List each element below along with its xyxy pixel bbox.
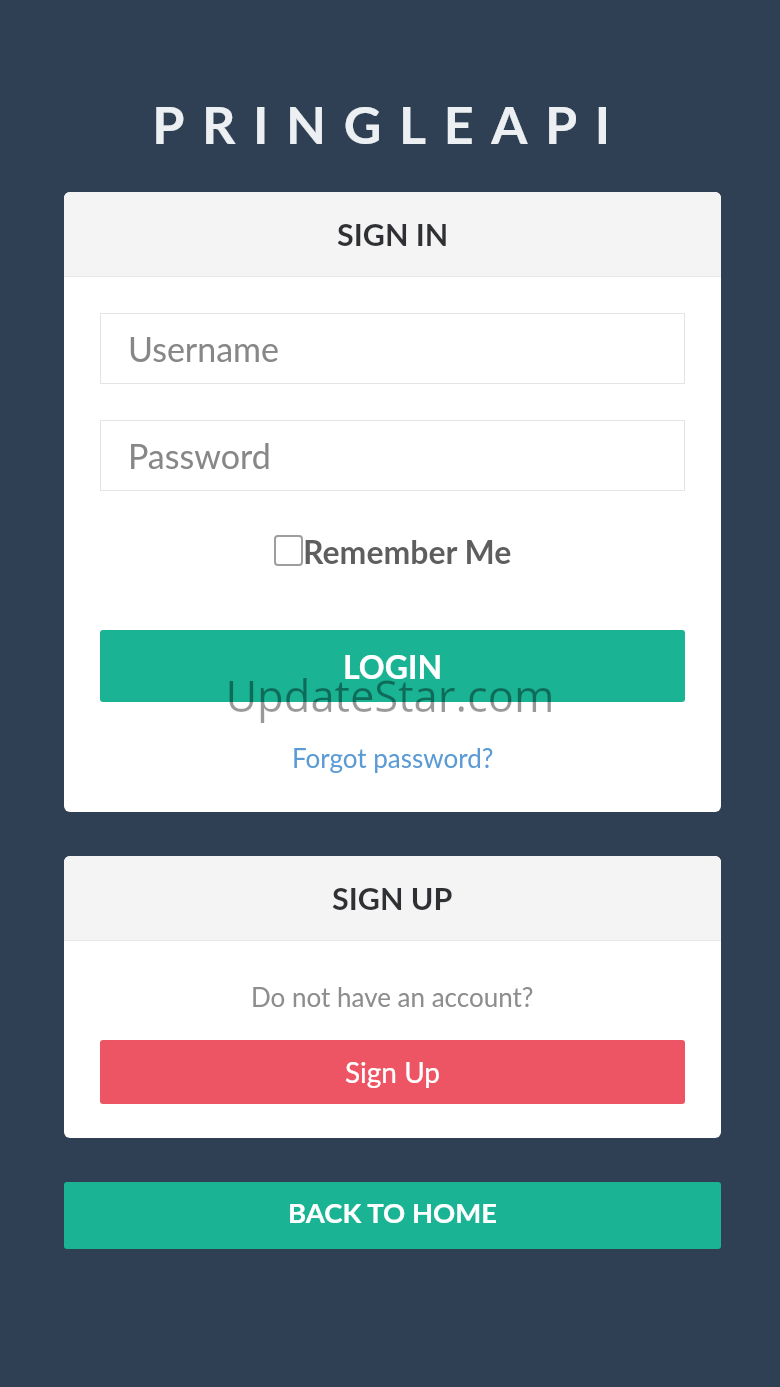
staticText: UpdateStar.com [0,666,780,725]
staticText: Username [128,328,280,369]
button[interactable]: LOGIN [100,630,685,702]
staticText: Password [128,435,271,476]
button[interactable]: Remember Me checkbox [274,528,512,574]
staticText: SIGN UP [332,880,453,917]
staticText: Sign Up [345,1055,441,1089]
button[interactable]: Password [100,420,685,491]
button[interactable]: Username [100,313,685,384]
staticText: PRINGLEAPI [0,93,780,155]
staticText: LOGIN [343,647,443,685]
button[interactable]: Sign Up [100,1040,685,1104]
staticText: Forgot password? [292,742,494,773]
staticText: Do not have an account? [251,981,534,1012]
button[interactable]: Forgot password? [292,737,494,777]
button[interactable]: BACK TO HOME [64,1182,721,1249]
staticText: BACK TO HOME [288,1196,498,1229]
staticText: Remember Me [303,532,512,570]
staticText: SIGN IN [337,216,449,253]
other: Remember Me checkbox [274,535,303,566]
